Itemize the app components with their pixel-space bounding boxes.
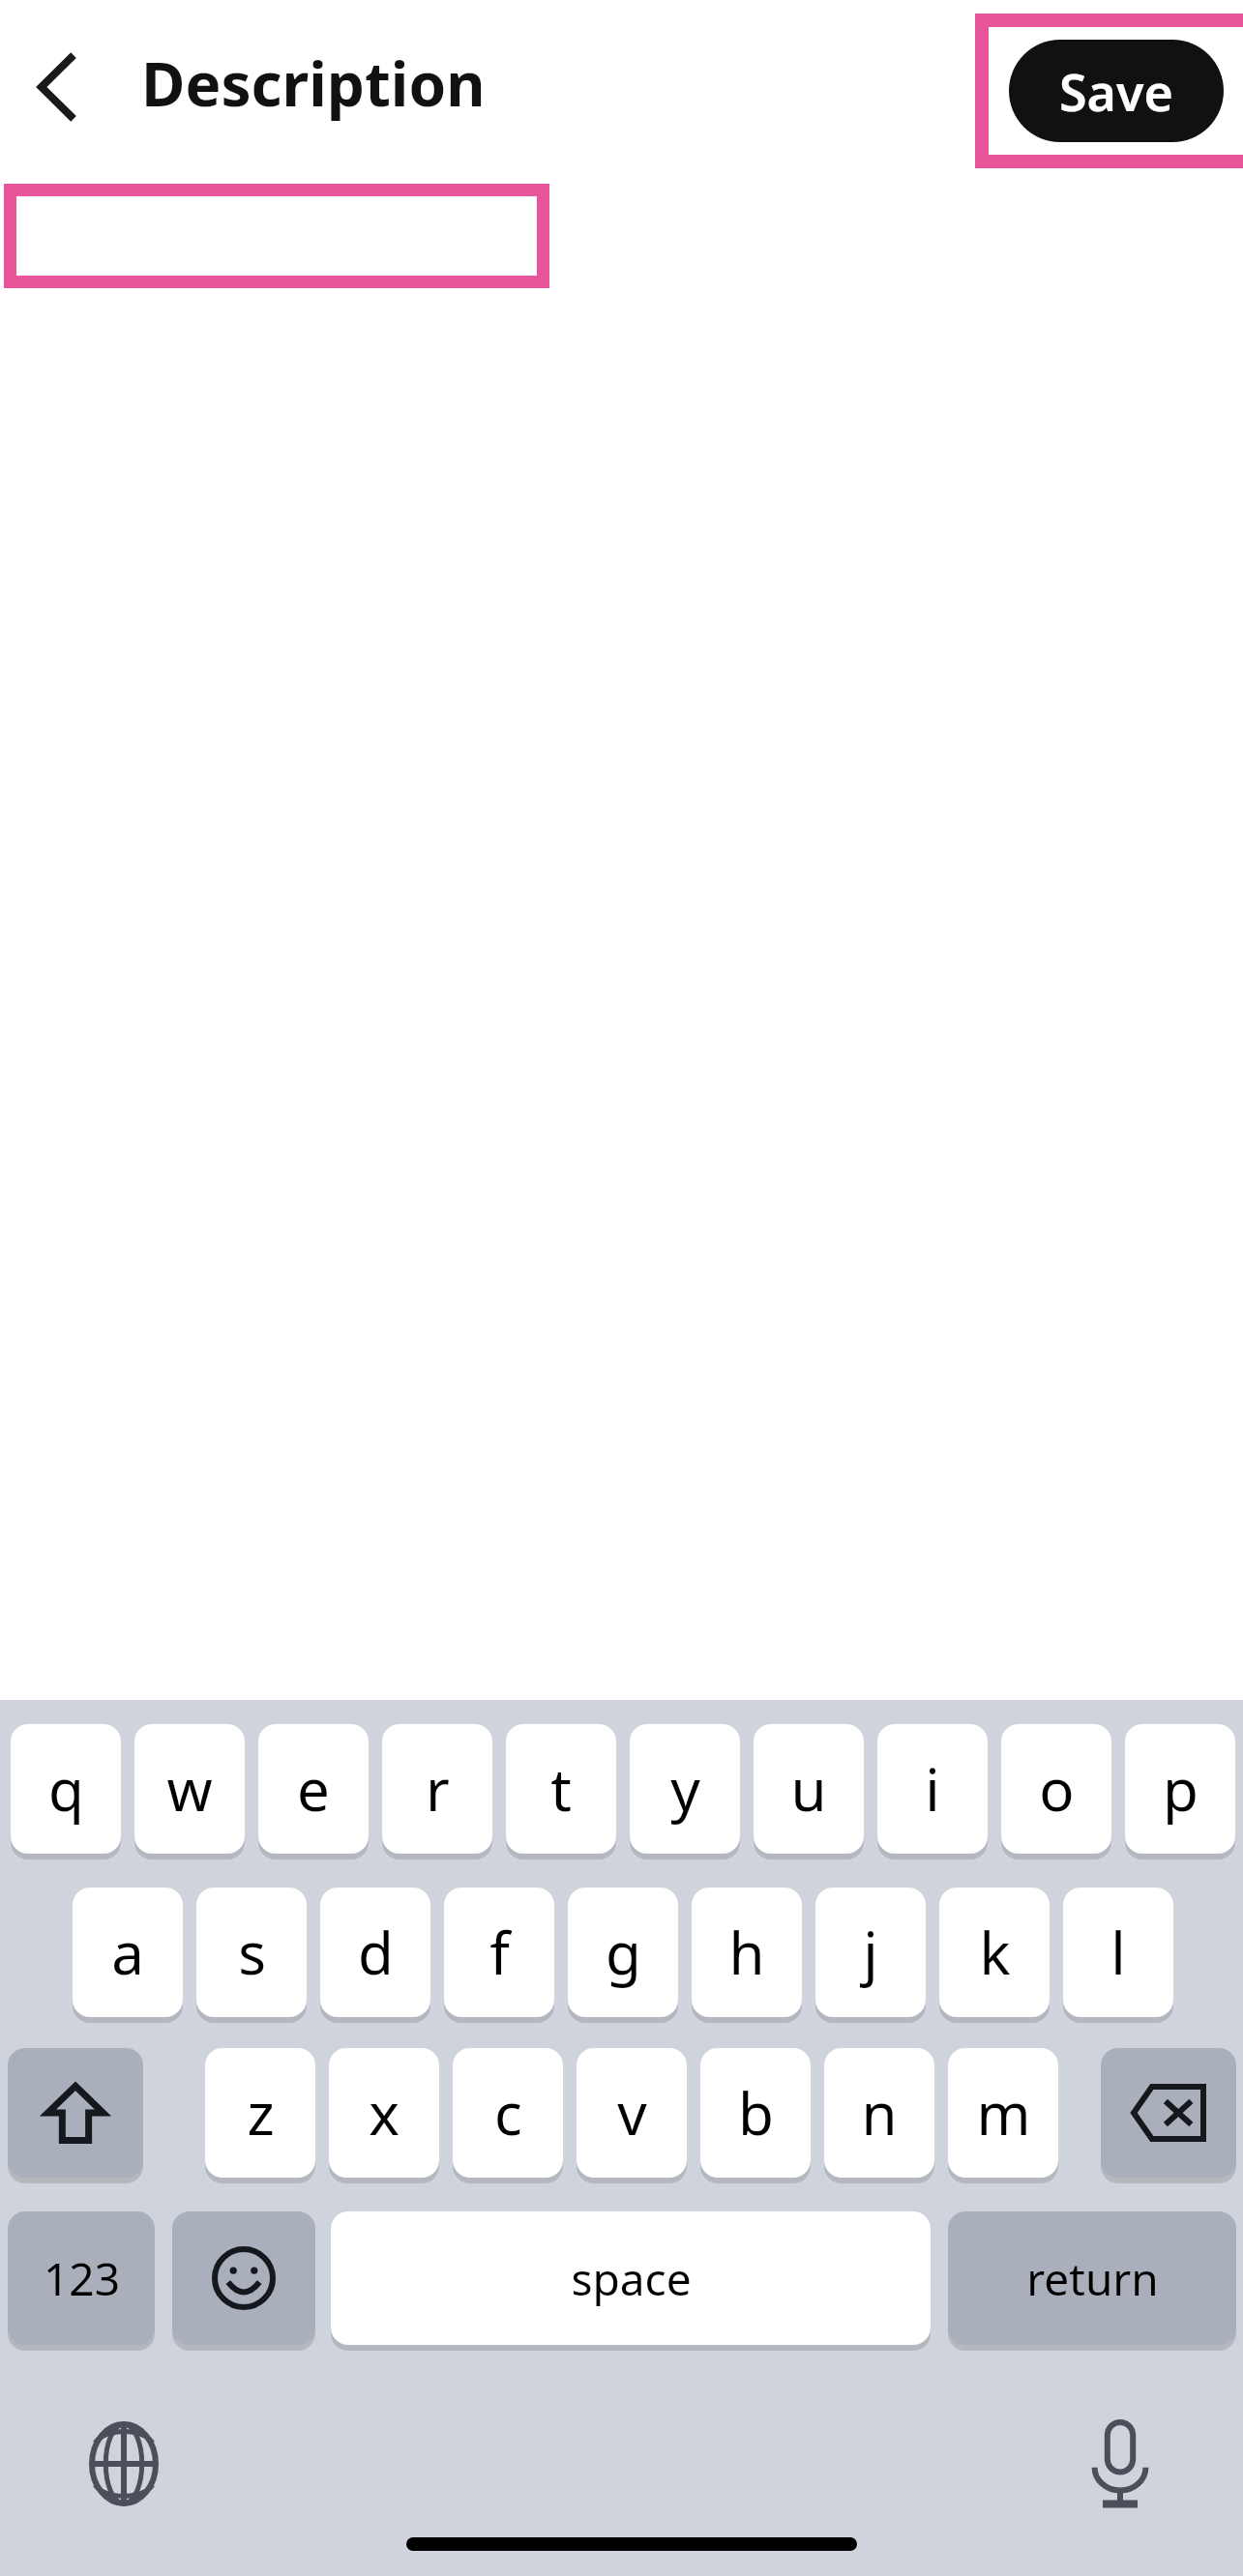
staticText: space — [571, 2248, 692, 2309]
staticText: k — [979, 1913, 1011, 1992]
button[interactable]: space — [331, 2211, 931, 2345]
button[interactable]: i — [877, 1724, 988, 1854]
staticText: x — [369, 2073, 400, 2152]
button[interactable]: m — [948, 2048, 1058, 2178]
staticText: v — [617, 2073, 647, 2152]
staticText: Description — [141, 43, 486, 124]
button[interactable]: Change keyboard language — [58, 2398, 190, 2530]
staticText: o — [1039, 1749, 1075, 1829]
button[interactable]: v — [577, 2048, 687, 2178]
staticText: l — [1110, 1913, 1126, 1992]
staticText: r — [426, 1749, 450, 1829]
button[interactable]: u — [754, 1724, 864, 1854]
staticText: z — [247, 2073, 275, 2152]
staticText: n — [861, 2073, 898, 2152]
button[interactable]: x — [329, 2048, 439, 2178]
button[interactable]: y — [630, 1724, 740, 1854]
staticText: s — [238, 1913, 266, 1992]
staticText: d — [358, 1913, 394, 1992]
button[interactable]: Shift — [8, 2048, 143, 2178]
staticText: return — [1026, 2248, 1159, 2309]
button[interactable]: k — [939, 1888, 1050, 2017]
button[interactable]: f — [444, 1888, 554, 2017]
staticText: f — [489, 1913, 510, 1992]
button[interactable]: n — [824, 2048, 934, 2178]
button[interactable]: a — [73, 1888, 183, 2017]
staticText: b — [738, 2073, 774, 2152]
button[interactable]: Voice input — [1054, 2398, 1186, 2530]
button[interactable]: o — [1001, 1724, 1111, 1854]
button[interactable]: g — [568, 1888, 678, 2017]
button[interactable]: z — [205, 2048, 315, 2178]
staticText: t — [550, 1749, 572, 1829]
button[interactable]: e — [258, 1724, 369, 1854]
staticText: g — [606, 1913, 641, 1992]
button[interactable]: t — [506, 1724, 616, 1854]
button[interactable]: b — [700, 2048, 811, 2178]
staticText: u — [790, 1749, 827, 1829]
staticText: j — [863, 1913, 878, 1992]
button[interactable]: c — [453, 2048, 563, 2178]
button[interactable]: Back — [6, 37, 106, 137]
staticText: h — [728, 1913, 765, 1992]
button[interactable]: h — [692, 1888, 802, 2017]
button[interactable]: r — [382, 1724, 492, 1854]
button[interactable]: Save — [1009, 40, 1224, 142]
button[interactable]: s — [196, 1888, 307, 2017]
button[interactable]: return — [948, 2211, 1236, 2345]
staticText: a — [111, 1913, 144, 1992]
staticText: y — [670, 1749, 700, 1829]
staticText: p — [1163, 1749, 1199, 1829]
button[interactable] — [16, 196, 537, 276]
staticText: m — [976, 2073, 1031, 2152]
staticText: q — [48, 1749, 84, 1829]
staticText: w — [166, 1749, 213, 1829]
button[interactable]: Backspace — [1101, 2048, 1236, 2178]
button[interactable]: l — [1063, 1888, 1173, 2017]
staticText: i — [925, 1749, 940, 1829]
button[interactable]: 123 — [8, 2211, 155, 2345]
button[interactable]: d — [320, 1888, 430, 2017]
button[interactable]: j — [815, 1888, 926, 2017]
button[interactable]: p — [1125, 1724, 1235, 1854]
staticText: 123 — [44, 2248, 120, 2309]
button[interactable]: w — [134, 1724, 245, 1854]
staticText: Save — [1059, 57, 1173, 126]
staticText: e — [297, 1749, 330, 1829]
staticText: c — [494, 2073, 522, 2152]
button[interactable]: q — [11, 1724, 121, 1854]
button[interactable]: Emoji — [172, 2211, 315, 2345]
